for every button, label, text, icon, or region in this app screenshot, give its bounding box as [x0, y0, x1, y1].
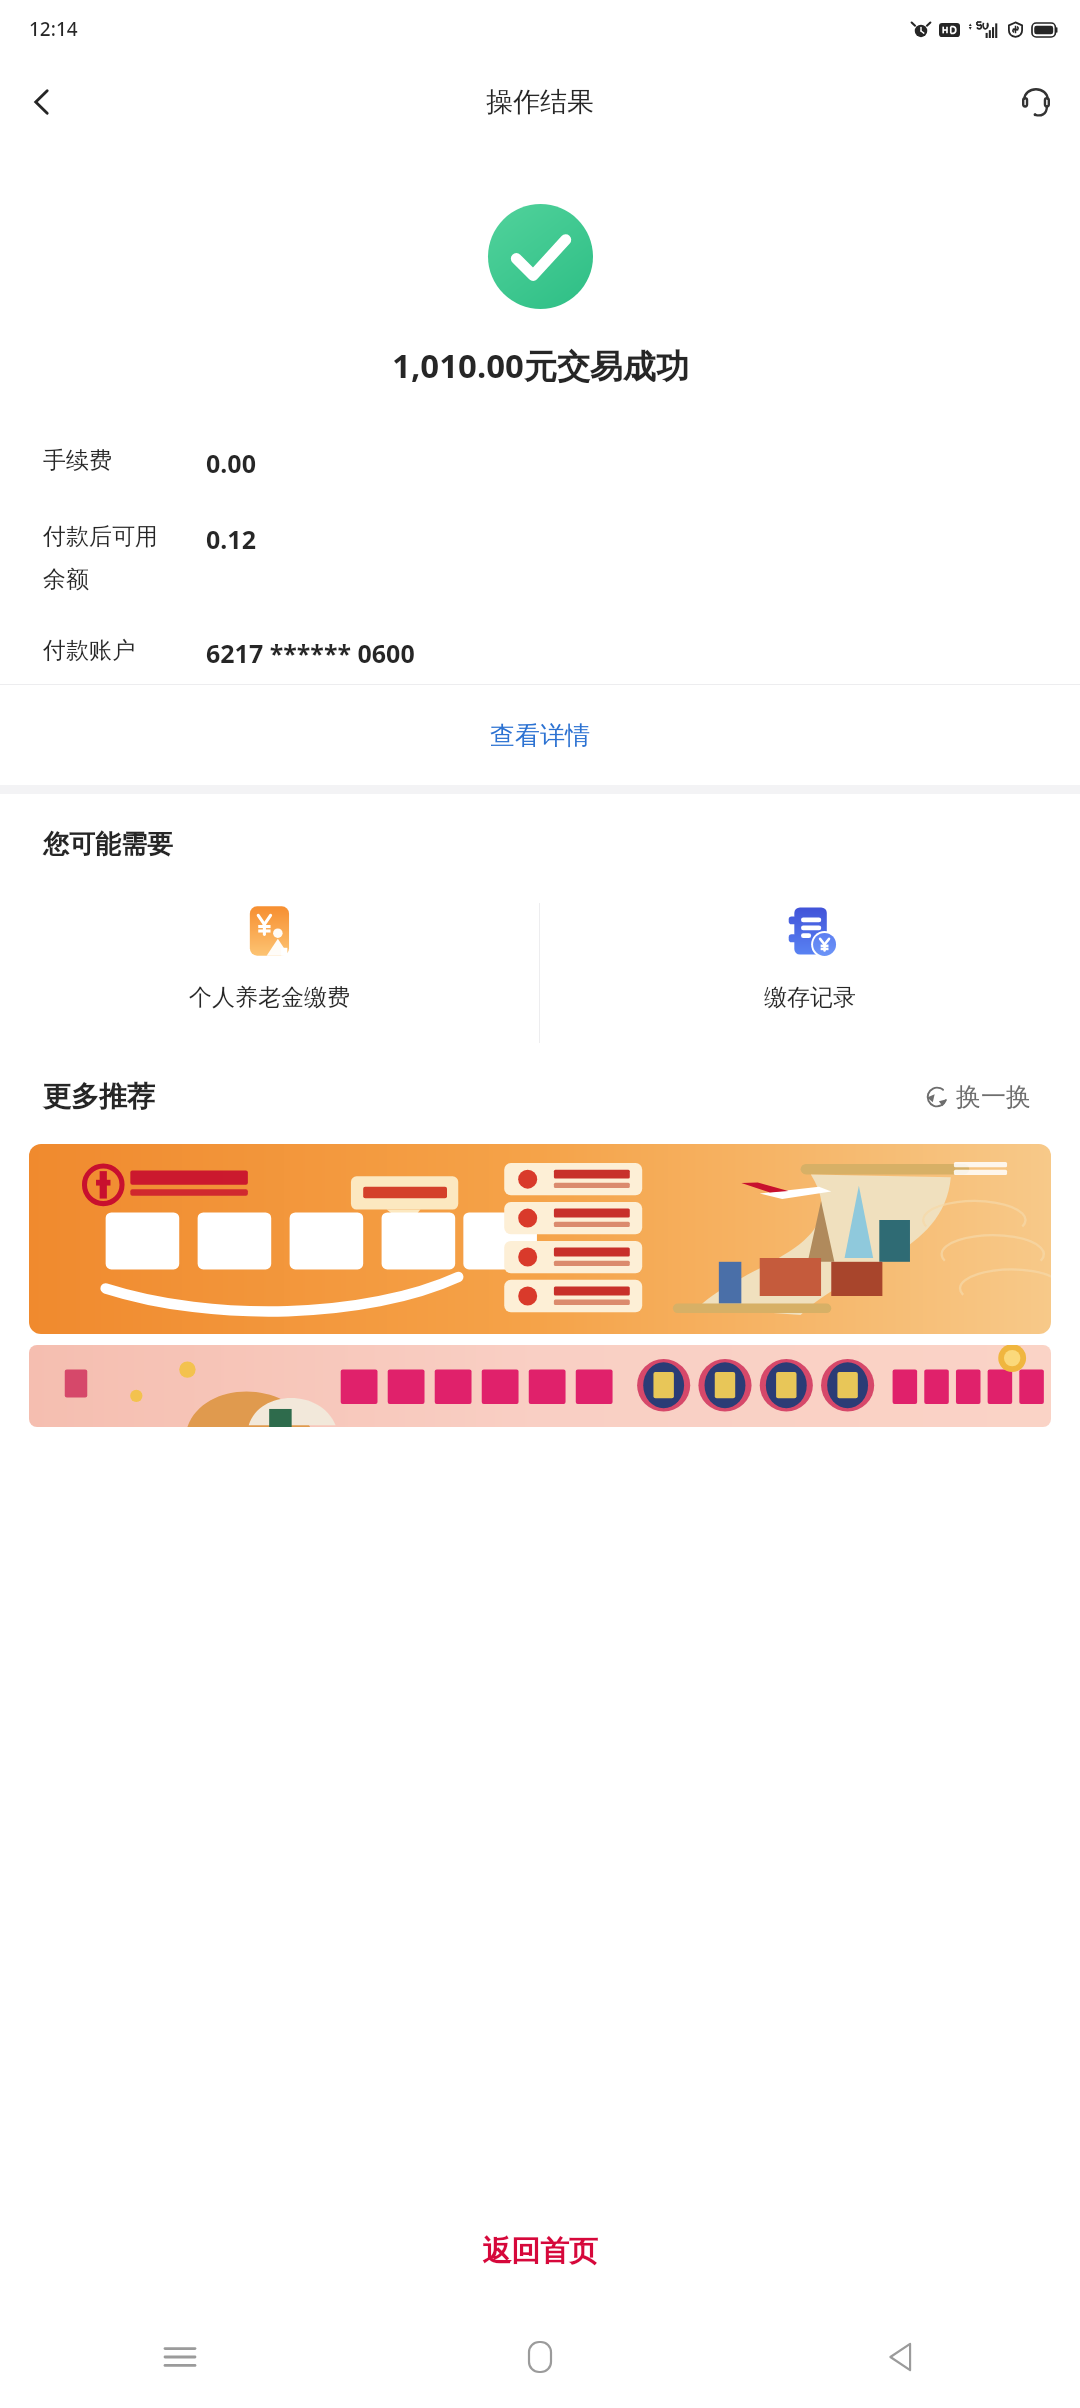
button[interactable]	[29, 1144, 1051, 1334]
staticText: 操作结果	[486, 85, 594, 119]
staticText: 缴存记录	[764, 983, 856, 1012]
button[interactable]: Recent apps	[0, 2320, 360, 2394]
button[interactable]: 返回首页	[0, 2208, 1080, 2294]
button[interactable]: 换一换	[918, 1075, 1037, 1118]
staticText: 1,010.00元交易成功	[392, 343, 689, 388]
button[interactable]: 缴存记录	[540, 897, 1080, 1049]
button[interactable]: Back	[14, 74, 70, 130]
staticText: 您可能需要	[43, 828, 173, 861]
button[interactable]	[29, 1345, 1051, 1427]
staticText: 0.00	[206, 446, 256, 480]
staticText: 个人养老金缴费	[189, 983, 350, 1012]
staticText: 付款后可用	[43, 522, 158, 551]
staticText: 手续费	[43, 446, 112, 475]
button[interactable]: Back	[720, 2320, 1080, 2394]
button[interactable]: 个人养老金缴费	[0, 897, 539, 1049]
button[interactable]: Home	[360, 2320, 720, 2394]
staticText: 付款账户	[43, 636, 135, 665]
staticText: 12:14	[29, 16, 78, 42]
button[interactable]: 查看详情	[0, 685, 1080, 785]
staticText: 换一换	[956, 1081, 1031, 1112]
staticText: 返回首页	[482, 2233, 598, 2270]
staticText: 0.12	[206, 522, 256, 556]
staticText: 余额	[43, 565, 89, 594]
staticText: 更多推荐	[43, 1079, 155, 1114]
staticText: 6217 ****** 0600	[206, 636, 415, 670]
staticText: 查看详情	[490, 720, 590, 751]
button[interactable]: Customer service	[1008, 74, 1064, 130]
